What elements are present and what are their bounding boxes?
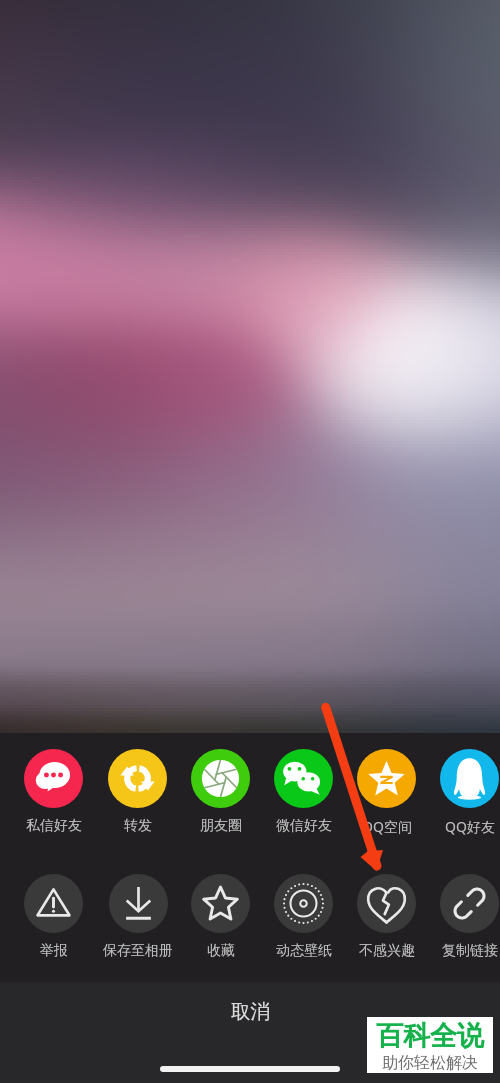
staticText: 转发 <box>124 817 152 835</box>
staticText: 取消 <box>231 999 270 1024</box>
button[interactable]: QQ好友 <box>428 743 500 837</box>
staticText: 举报 <box>40 942 68 960</box>
staticText: 动态壁纸 <box>276 942 332 960</box>
button[interactable]: 私信好友 <box>12 743 95 837</box>
button[interactable]: QQ空间 <box>345 743 428 837</box>
button[interactable]: 保存至相册 <box>96 868 179 962</box>
button[interactable]: 不感兴趣 <box>345 868 428 962</box>
button[interactable]: 收藏 <box>179 868 262 962</box>
button[interactable]: 转发 <box>96 743 179 837</box>
button[interactable]: 复制链接 <box>428 868 500 962</box>
button[interactable]: 动态壁纸 <box>262 868 345 962</box>
staticText: 朋友圈 <box>200 817 242 835</box>
staticText: 百科全说 <box>376 1019 484 1053</box>
staticText: QQ好友 <box>445 817 495 836</box>
staticText: 微信好友 <box>276 817 332 835</box>
button[interactable]: 取消 <box>0 982 500 1083</box>
staticText: 复制链接 <box>442 942 498 960</box>
button[interactable]: 朋友圈 <box>179 743 262 837</box>
staticText: 助你轻松解决 <box>382 1053 478 1073</box>
staticText: 私信好友 <box>26 817 82 835</box>
staticText: 保存至相册 <box>103 942 173 960</box>
staticText: 不感兴趣 <box>359 942 415 960</box>
button[interactable]: 微信好友 <box>262 743 345 837</box>
staticText: QQ空间 <box>362 817 412 836</box>
button[interactable]: 举报 <box>12 868 95 962</box>
staticText: 收藏 <box>207 942 235 960</box>
